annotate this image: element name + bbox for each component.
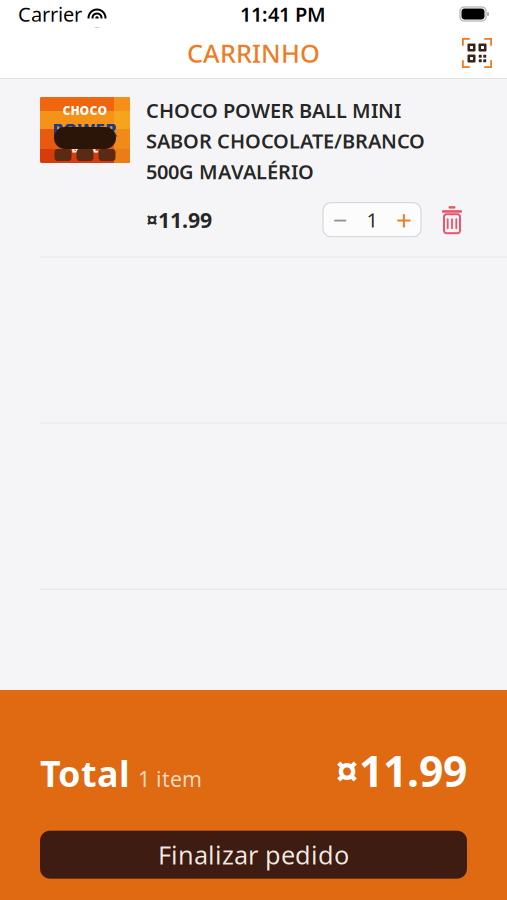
- staticText: Carrier: [18, 1, 82, 27]
- staticText: 11:41 PM: [240, 1, 326, 27]
- staticText: ¤11.99: [146, 205, 212, 234]
- staticText: ¤11.99: [335, 742, 467, 799]
- button[interactable]: Finalizar pedido: [40, 831, 467, 879]
- staticText: −: [333, 203, 347, 236]
- button[interactable]: +: [387, 203, 421, 237]
- staticText: 1 item: [138, 764, 202, 793]
- staticText: CARRINHO: [187, 36, 320, 70]
- staticText: CHOCO: [62, 102, 107, 118]
- button[interactable]: Remover item: [421, 206, 467, 234]
- staticText: 1: [366, 206, 377, 233]
- staticText: CHOCO POWER BALL MINI SABOR CHOCOLATE/BR…: [146, 97, 425, 185]
- staticText: +: [396, 201, 412, 238]
- staticText: Finalizar pedido: [158, 838, 349, 871]
- button[interactable]: −: [323, 203, 357, 237]
- button[interactable]: Escanear código: [461, 37, 507, 69]
- staticText: BALL: [71, 141, 98, 156]
- staticText: POWER: [52, 118, 117, 141]
- staticText: Total: [40, 749, 130, 797]
